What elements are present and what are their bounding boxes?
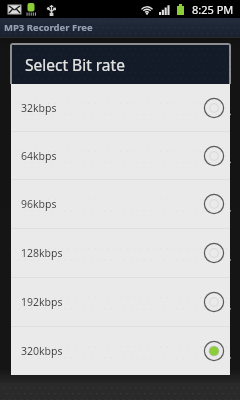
staticText: 320kbps [21,344,203,358]
staticText: 128kbps [21,246,203,260]
staticText: 8:25 PM [192,2,234,17]
other: Battery status [26,3,36,16]
other: Not selected [203,242,225,264]
button[interactable]: 320kbps [11,327,230,375]
staticText: 192kbps [21,295,203,309]
other: Selected [203,340,225,362]
other: New mail [8,5,21,14]
other: Not selected [203,145,225,167]
button[interactable]: 64kbps [11,132,230,179]
button[interactable]: 96kbps [11,180,230,228]
staticText: 64kbps [21,149,203,163]
staticText: Select Bit rate [25,54,125,75]
other: Not selected [203,193,225,215]
staticText: MP3 Recorder Free [4,21,93,34]
button[interactable]: 128kbps [11,229,230,277]
button[interactable]: 32kbps [11,84,230,131]
staticText: 32kbps [21,101,203,115]
other: USB connected [47,4,56,16]
other: Not selected [203,291,225,313]
other: Not selected [203,97,225,119]
staticText: 96kbps [21,197,203,211]
button[interactable]: 192kbps [11,278,230,326]
